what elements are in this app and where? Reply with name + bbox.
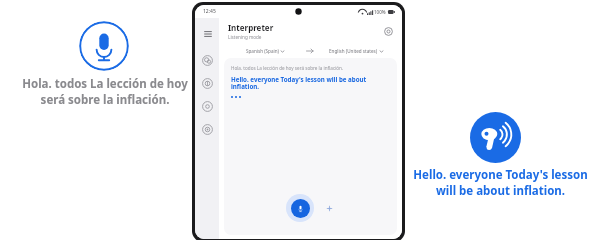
button[interactable]: Rail action 4 <box>200 122 215 137</box>
button[interactable]: Earbud audio output <box>470 112 521 163</box>
button[interactable]: Microphone <box>79 21 129 71</box>
staticText: Hello. everyone Today's lesson will be a… <box>413 167 588 198</box>
button[interactable]: Rail action 1 <box>200 53 215 68</box>
staticText: 12:45 <box>203 8 216 15</box>
staticText: 100% <box>374 9 386 15</box>
staticText: Spanish (Spain) <box>246 48 279 54</box>
staticText: Hello. everyone Today's lesson will be a… <box>231 75 390 91</box>
staticText: Hola. todos La lección de hoy será sobre… <box>231 65 344 71</box>
button[interactable]: English (United states) <box>315 46 396 56</box>
staticText: Interpreter <box>228 22 274 33</box>
staticText: English (United states) <box>329 48 378 54</box>
button[interactable]: Spanish (Spain) <box>225 46 305 56</box>
staticText: Listening mode <box>228 34 262 40</box>
button[interactable]: Start listening <box>286 194 314 222</box>
button[interactable]: Settings <box>382 25 395 38</box>
button[interactable]: Menu <box>200 26 215 41</box>
staticText: Hola. todos La lección de hoy será sobre… <box>18 76 192 107</box>
button[interactable]: Rail action 2 <box>200 76 215 91</box>
button[interactable]: Swap languages <box>323 202 335 214</box>
button[interactable]: Rail action 3 <box>200 99 215 114</box>
